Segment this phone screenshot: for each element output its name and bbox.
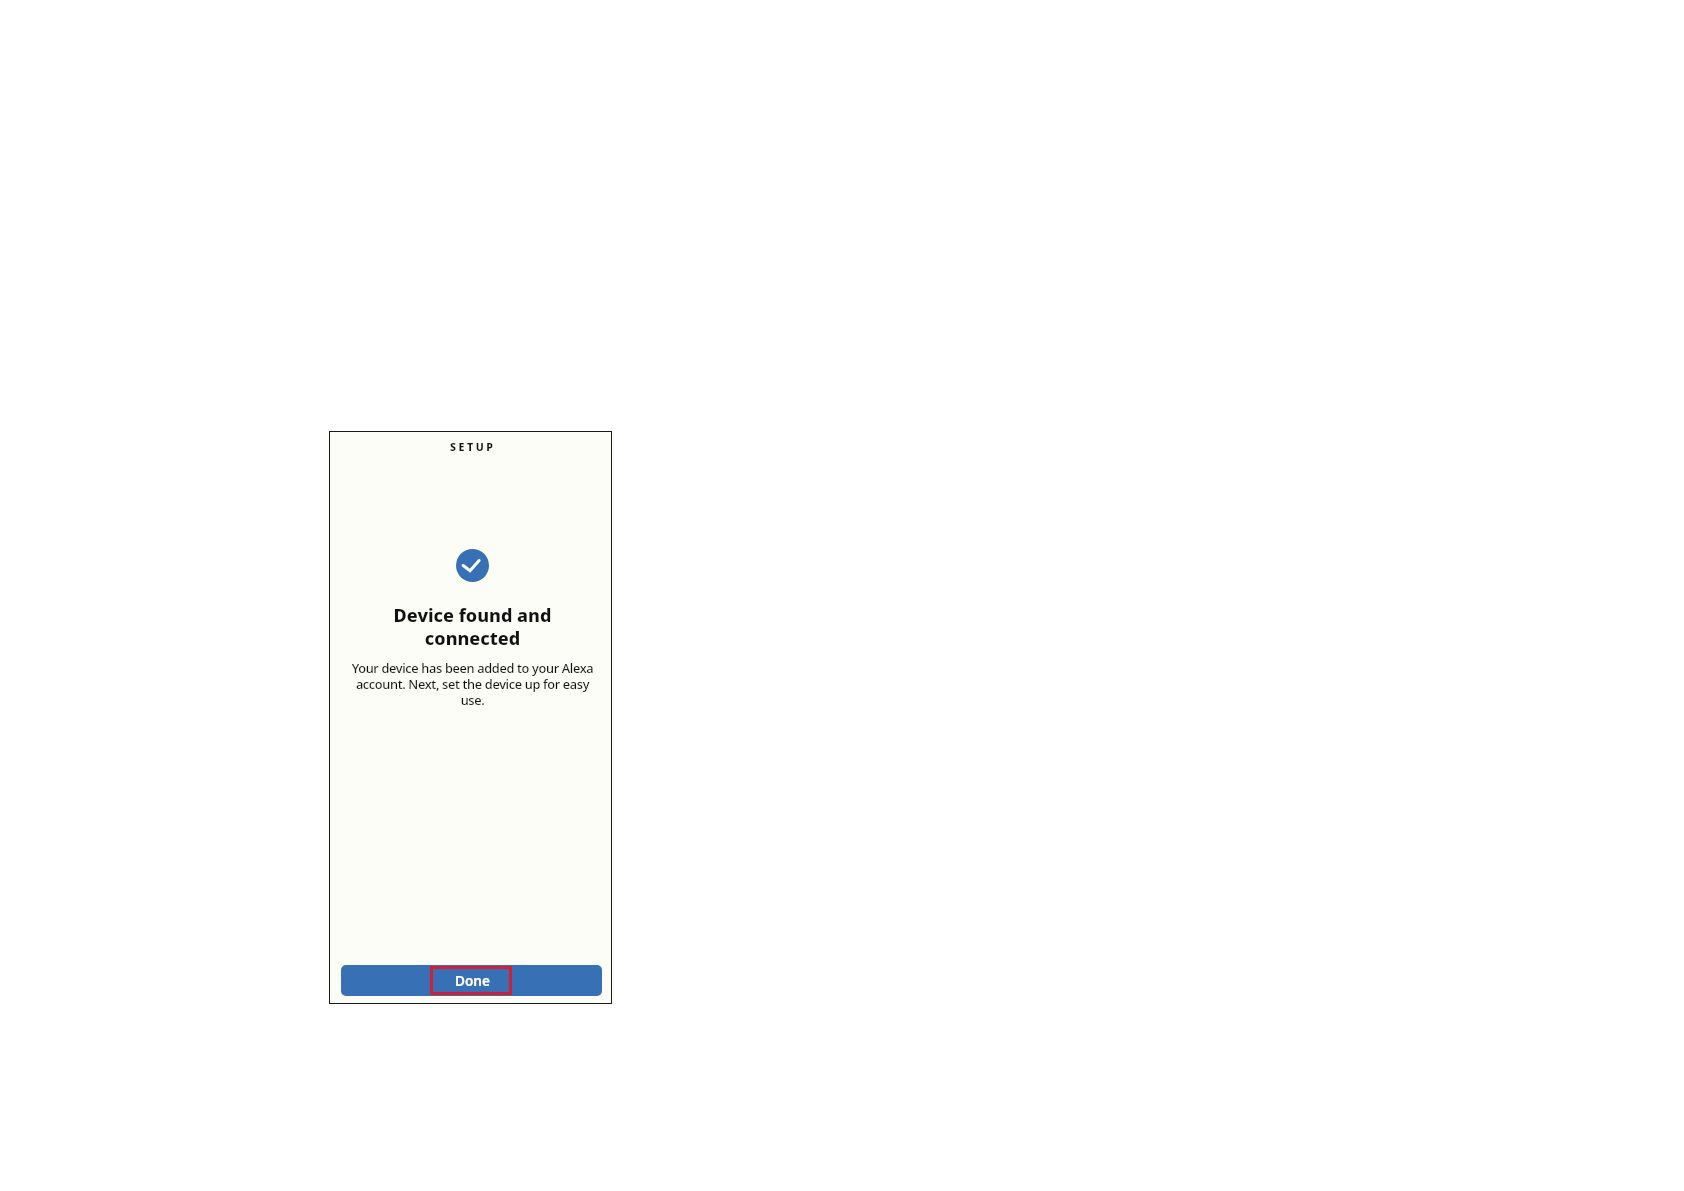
- other: Device connected: [456, 549, 489, 582]
- staticText: Your device has been added to your Alexa…: [346, 659, 599, 708]
- staticText: Done: [455, 971, 490, 990]
- button[interactable]: Done: [341, 965, 602, 996]
- staticText: Device found and connected: [361, 603, 584, 650]
- staticText: SETUP: [450, 440, 496, 454]
